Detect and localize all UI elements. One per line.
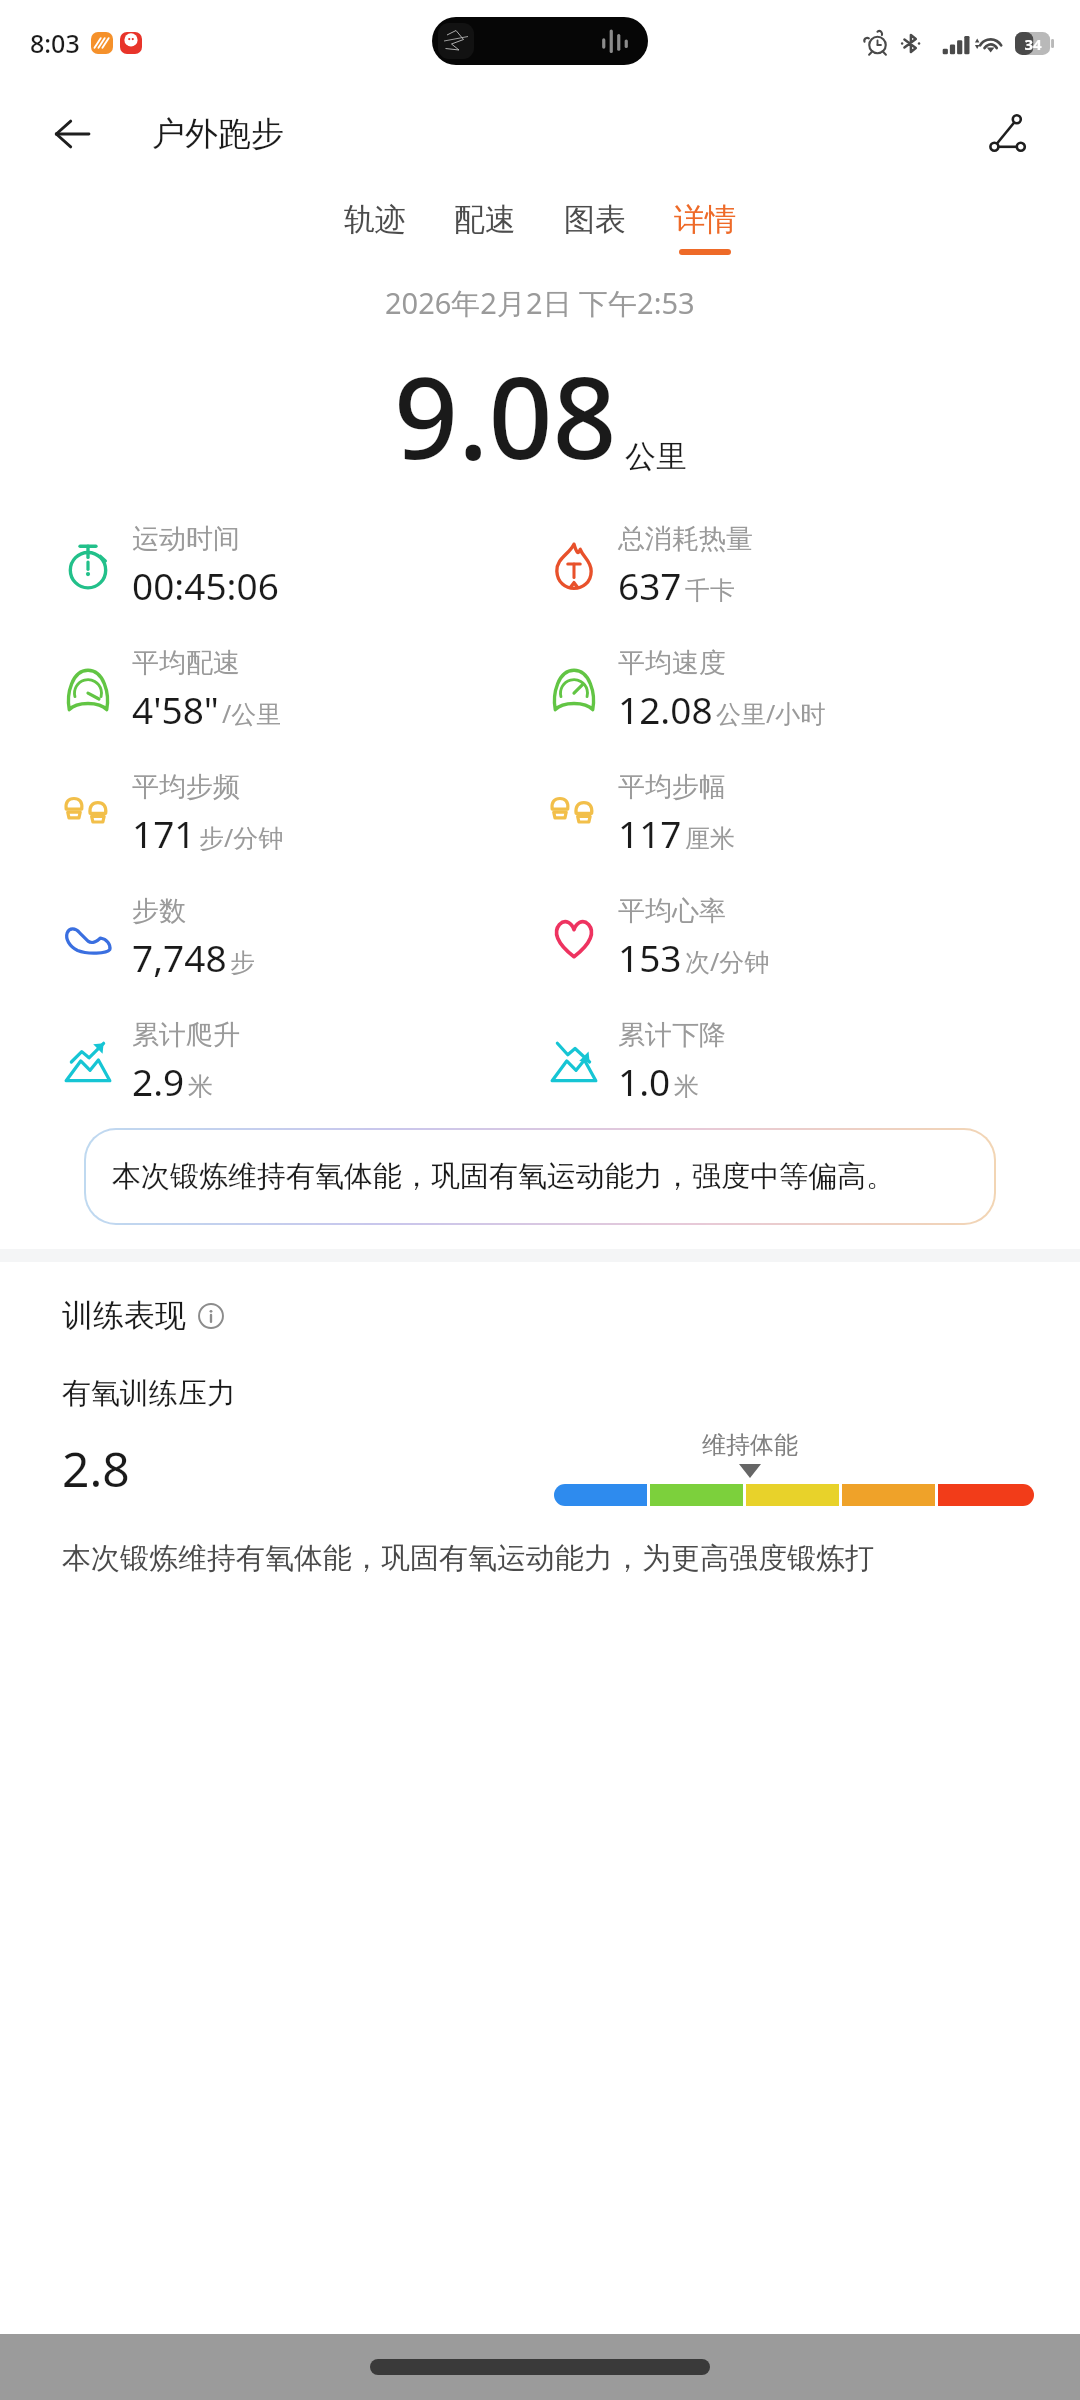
staticText: 本次锻炼维持有氧体能，巩固有氧运动能力，为更高强度锻炼打 bbox=[62, 1540, 1034, 1577]
staticText: 次/分钟 bbox=[685, 944, 770, 978]
staticText: 步数 bbox=[132, 894, 186, 928]
button[interactable]: 累计爬升 bbox=[0, 1018, 540, 1106]
button[interactable]: 轨迹 bbox=[320, 194, 430, 261]
staticText: 千卡 bbox=[685, 575, 735, 606]
staticText: 2.8 bbox=[62, 1436, 130, 1501]
staticText: 8:03 bbox=[30, 26, 80, 60]
staticText: 公里/小时 bbox=[716, 696, 826, 730]
staticText: 配速 bbox=[454, 200, 516, 239]
staticText: 7,748 bbox=[132, 932, 227, 982]
staticText: 米 bbox=[674, 1071, 699, 1102]
button[interactable]: 总消耗热量 bbox=[540, 522, 1080, 610]
staticText: 图表 bbox=[564, 200, 626, 239]
staticText: 9.08 bbox=[394, 339, 617, 492]
staticText: 2.9 bbox=[132, 1056, 185, 1106]
button[interactable]: 步数 bbox=[0, 894, 540, 982]
staticText: 平均步幅 bbox=[618, 770, 726, 804]
staticText: 本次锻炼维持有氧体能，巩固有氧运动能力，强度中等偏高。 bbox=[112, 1158, 895, 1195]
staticText: 1.0 bbox=[618, 1056, 671, 1106]
button[interactable]: 配速 bbox=[430, 194, 540, 261]
button[interactable]: 训练表现 bbox=[62, 1296, 224, 1335]
staticText: 厘米 bbox=[685, 823, 735, 854]
button[interactable]: Share bbox=[978, 104, 1038, 164]
button[interactable]: Back bbox=[46, 107, 100, 161]
staticText: 4'58" bbox=[132, 684, 219, 734]
staticText: 平均配速 bbox=[132, 646, 240, 680]
button[interactable]: 平均步频 bbox=[0, 770, 540, 858]
staticText: 累计下降 bbox=[618, 1018, 726, 1052]
staticText: 34 bbox=[1024, 34, 1042, 54]
button[interactable]: 本次锻炼维持有氧体能，巩固有氧运动能力，强度中等偏高。 bbox=[86, 1130, 994, 1223]
button[interactable]: 运动时间 bbox=[0, 522, 540, 610]
staticText: 训练表现 bbox=[62, 1296, 186, 1335]
button[interactable]: 详情 bbox=[650, 194, 760, 261]
staticText: 累计爬升 bbox=[132, 1018, 240, 1052]
button[interactable]: 平均步幅 bbox=[540, 770, 1080, 858]
staticText: 2026年2月2日 下午2:53 bbox=[385, 283, 695, 323]
button[interactable]: 平均配速 bbox=[0, 646, 540, 734]
button[interactable]: 平均心率 bbox=[540, 894, 1080, 982]
staticText: 总消耗热量 bbox=[618, 522, 753, 556]
staticText: 步 bbox=[230, 947, 255, 978]
staticText: 171 bbox=[132, 808, 196, 858]
staticText: 米 bbox=[188, 1071, 213, 1102]
staticText: 平均步频 bbox=[132, 770, 240, 804]
staticText: 153 bbox=[618, 932, 682, 982]
staticText: 维持体能 bbox=[702, 1430, 798, 1460]
staticText: 户外跑步 bbox=[152, 113, 284, 155]
staticText: 00:45:06 bbox=[132, 560, 279, 610]
staticText: 637 bbox=[618, 560, 682, 610]
button[interactable]: 累计下降 bbox=[540, 1018, 1080, 1106]
staticText: 平均速度 bbox=[618, 646, 726, 680]
staticText: 117 bbox=[618, 808, 682, 858]
button[interactable]: 平均速度 bbox=[540, 646, 1080, 734]
staticText: 公里 bbox=[625, 437, 687, 476]
staticText: 轨迹 bbox=[344, 200, 406, 239]
staticText: /公里 bbox=[222, 696, 282, 730]
staticText: 详情 bbox=[674, 200, 736, 239]
button[interactable]: 图表 bbox=[540, 194, 650, 261]
staticText: 平均心率 bbox=[618, 894, 726, 928]
staticText: 12.08 bbox=[618, 684, 713, 734]
staticText: 步/分钟 bbox=[199, 820, 284, 854]
staticText: 有氧训练压力 bbox=[62, 1375, 236, 1412]
staticText: 运动时间 bbox=[132, 522, 240, 556]
